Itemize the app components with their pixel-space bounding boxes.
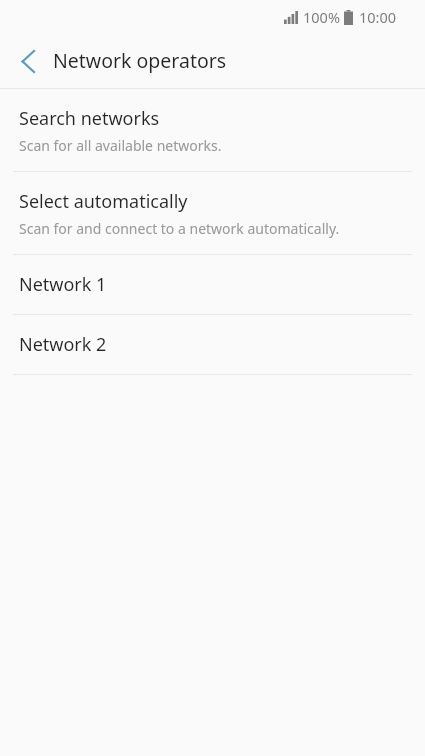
staticText: Search networks [19,106,160,131]
button[interactable]: Back [6,39,50,83]
button[interactable]: Network 1 [0,255,425,314]
staticText: Scan for all available networks. [19,136,222,155]
staticText: Select automatically [19,189,188,214]
staticText: 100% [303,7,340,27]
button[interactable]: Select automatically [0,172,425,254]
staticText: Network operators [53,47,227,74]
button[interactable]: Search networks [0,89,425,171]
button[interactable]: Network 2 [0,315,425,374]
staticText: Scan for and connect to a network automa… [19,219,340,238]
staticText: 10:00 [359,7,397,27]
staticText: Network 2 [19,332,107,357]
staticText: Network 1 [19,272,107,297]
